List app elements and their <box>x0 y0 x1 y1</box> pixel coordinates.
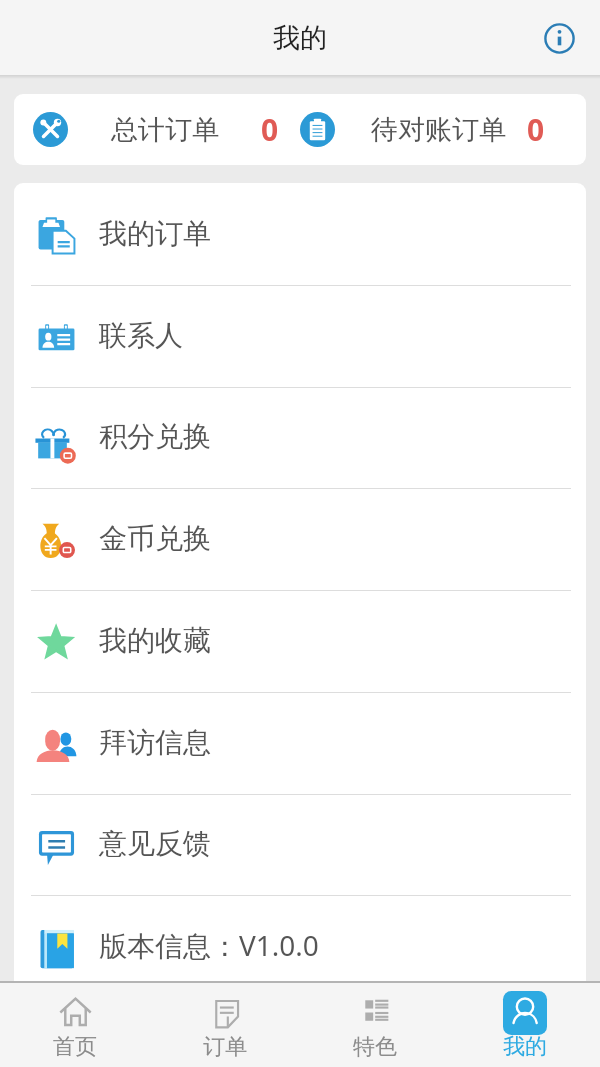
button[interactable]: 特色 <box>300 983 450 1067</box>
button[interactable]: 版本信息：V1.0.0 <box>14 896 586 981</box>
button[interactable]: 金币兑换 <box>14 489 586 591</box>
staticText: 0 <box>527 109 545 150</box>
staticText: 总计订单 <box>111 113 219 147</box>
staticText: 订单 <box>203 1033 247 1061</box>
button[interactable]: 我的 <box>450 983 600 1067</box>
staticText: 积分兑换 <box>99 419 211 454</box>
staticText: 我的 <box>273 21 327 55</box>
button[interactable]: 我的收藏 <box>14 591 586 693</box>
button[interactable]: 意见反馈 <box>14 794 586 896</box>
button[interactable]: 积分兑换 <box>14 387 586 489</box>
staticText: 特色 <box>353 1033 397 1061</box>
staticText: 拜访信息 <box>99 725 211 760</box>
staticText: 版本信息：V1.0.0 <box>99 926 319 964</box>
staticText: 首页 <box>53 1033 97 1061</box>
button[interactable]: Info <box>539 18 579 58</box>
staticText: 联系人 <box>99 318 183 353</box>
button[interactable]: 我的订单 <box>14 184 586 286</box>
button[interactable]: 拜访信息 <box>14 693 586 795</box>
button[interactable]: 订单 <box>150 983 300 1067</box>
button[interactable]: 待对账订单 <box>286 94 586 165</box>
staticText: 我的订单 <box>99 216 211 251</box>
staticText: 我的 <box>503 1033 547 1061</box>
button[interactable]: 总计订单 <box>14 94 286 165</box>
staticText: 0 <box>261 109 279 150</box>
button[interactable]: 联系人 <box>14 286 586 388</box>
button[interactable]: 首页 <box>0 983 150 1067</box>
staticText: 金币兑换 <box>99 521 211 556</box>
staticText: 待对账订单 <box>371 113 506 147</box>
staticText: 意见反馈 <box>99 826 211 861</box>
staticText: 我的收藏 <box>99 623 211 658</box>
